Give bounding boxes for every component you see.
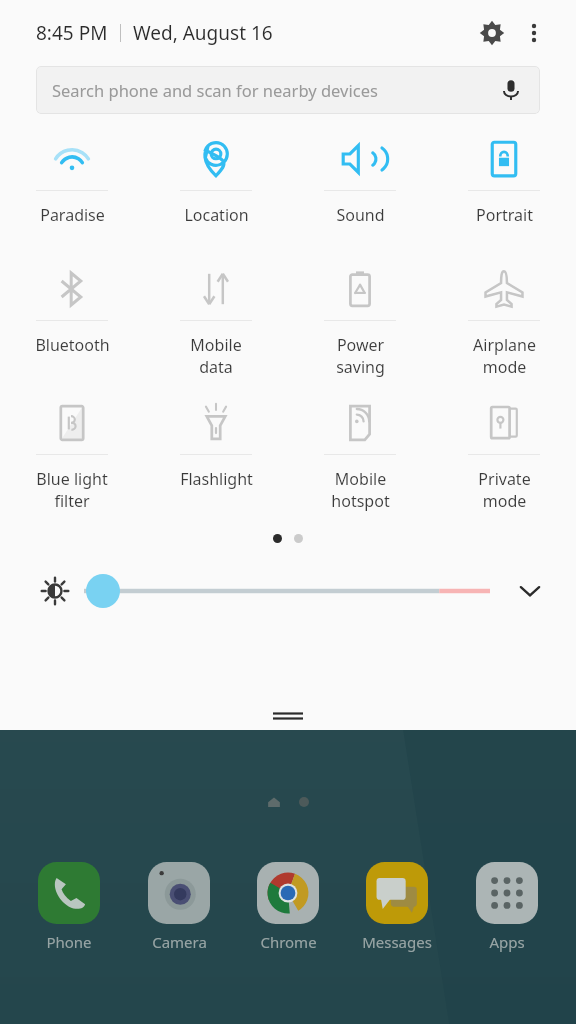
staticText: Camera: [152, 932, 207, 952]
staticText: Blue light filter: [36, 468, 108, 512]
staticText: Flashlight: [180, 468, 253, 490]
button[interactable]: Airplane mode: [432, 258, 576, 378]
staticText: Power saving: [336, 334, 385, 378]
staticText: Mobile hotspot: [331, 468, 390, 512]
staticText: Messages: [362, 932, 432, 952]
button[interactable]: Phone: [19, 860, 119, 952]
button[interactable]: Mobile data: [144, 258, 288, 378]
staticText: Portrait: [476, 204, 533, 226]
staticText: Location: [184, 204, 249, 226]
button[interactable]: Flashlight: [144, 392, 288, 490]
staticText: Bluetooth: [35, 334, 110, 356]
button[interactable]: Portrait: [432, 128, 576, 226]
button[interactable]: More options: [514, 13, 554, 53]
button[interactable]: Power saving: [288, 258, 432, 378]
button[interactable]: Search phone and scan for nearby devices: [36, 66, 540, 114]
button[interactable]: Apps: [457, 860, 557, 952]
staticText: Chrome: [260, 932, 317, 952]
button[interactable]: Paradise: [0, 128, 144, 226]
staticText: Airplane mode: [473, 334, 536, 378]
button[interactable]: Private mode: [432, 392, 576, 512]
staticText: Paradise: [40, 204, 105, 226]
staticText: Private mode: [478, 468, 531, 512]
button[interactable]: [84, 574, 490, 608]
staticText: Apps: [489, 932, 525, 952]
other: Brightness: [40, 576, 70, 606]
button[interactable]: Sound: [288, 128, 432, 226]
button[interactable]: Blue light filter: [0, 392, 144, 512]
staticText: Sound: [336, 204, 385, 226]
button[interactable]: Bluetooth: [0, 258, 144, 356]
other: Voice search: [498, 77, 524, 103]
button[interactable]: Settings: [470, 11, 514, 55]
button[interactable]: Expand brightness settings: [510, 571, 550, 611]
button[interactable]: Mobile hotspot: [288, 392, 432, 512]
button[interactable]: Chrome: [238, 860, 338, 952]
staticText: Search phone and scan for nearby devices: [52, 79, 378, 101]
staticText: Phone: [46, 932, 92, 952]
staticText: Wed, August 16: [133, 20, 273, 46]
staticText: Mobile data: [190, 334, 242, 378]
button[interactable]: Location: [144, 128, 288, 226]
staticText: 8:45 PM: [36, 20, 108, 46]
button[interactable]: Messages: [347, 860, 447, 952]
button[interactable]: Camera: [129, 860, 229, 952]
